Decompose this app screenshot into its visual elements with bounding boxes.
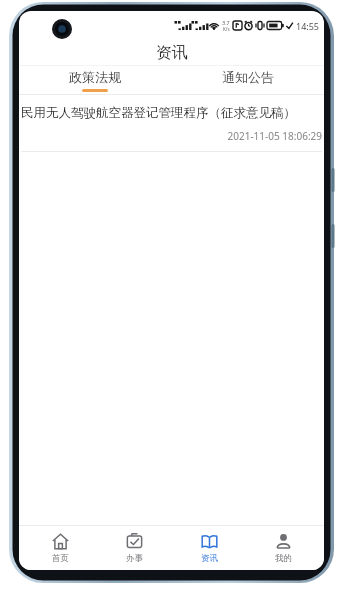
button[interactable]: 我的: [250, 533, 316, 564]
staticText: 我的: [275, 553, 292, 564]
button[interactable]: 办事: [101, 533, 167, 564]
button[interactable]: 通知公告: [171, 66, 324, 92]
button[interactable]: 首页: [27, 533, 93, 564]
staticText: 通知公告: [222, 69, 274, 85]
staticText: 2021-11-05 18:06:29: [21, 129, 322, 143]
staticText: 资讯: [156, 43, 188, 63]
staticText: 政策法规: [69, 69, 121, 85]
staticText: 办事: [126, 553, 143, 564]
staticText: 资讯: [201, 553, 218, 564]
staticText: 14:55: [296, 20, 320, 32]
staticText: 首页: [52, 553, 69, 564]
staticText: 3.7: [222, 19, 230, 26]
button[interactable]: 民用无人驾驶航空器登记管理程序（征求意见稿）: [19, 95, 324, 152]
staticText: K/s: [223, 26, 230, 32]
button[interactable]: 政策法规: [19, 66, 171, 92]
staticText: 民用无人驾驶航空器登记管理程序（征求意见稿）: [21, 105, 322, 121]
button[interactable]: 资讯: [176, 533, 242, 564]
